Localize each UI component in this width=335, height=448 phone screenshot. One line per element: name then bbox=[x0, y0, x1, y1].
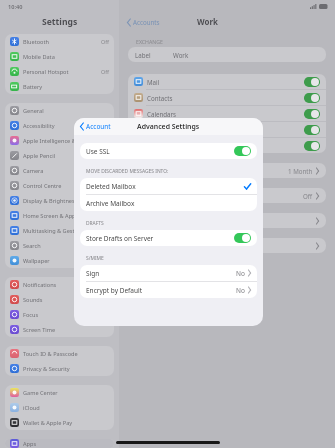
button[interactable]: Toggle bbox=[234, 233, 251, 243]
staticText: Archive Mailbox bbox=[86, 199, 135, 208]
staticText: Encrypt by Default bbox=[86, 286, 142, 295]
staticText: Work bbox=[197, 17, 218, 28]
staticText: Mail bbox=[147, 78, 160, 86]
button[interactable]: Privacy & Security bbox=[5, 361, 114, 376]
button[interactable]: Apple Intelligence & S bbox=[5, 133, 114, 148]
button[interactable]: Sounds bbox=[5, 292, 114, 307]
button[interactable]: Toggle bbox=[304, 93, 320, 103]
button[interactable]: Label bbox=[128, 47, 326, 62]
button[interactable]: Accessibility bbox=[5, 118, 114, 133]
staticText: Use SSL bbox=[86, 147, 110, 156]
button[interactable]: Reminders bbox=[128, 122, 326, 137]
staticText: S/MIME bbox=[86, 255, 104, 262]
button[interactable]: General bbox=[5, 103, 114, 118]
staticText: Search bbox=[23, 242, 41, 250]
button[interactable]: Sign bbox=[80, 265, 257, 281]
button[interactable]: Wallpaper bbox=[5, 253, 114, 268]
button[interactable]: Accounts bbox=[125, 16, 162, 28]
staticText: DRAFTS bbox=[86, 220, 104, 227]
staticText: Home Screen & App bbox=[23, 212, 76, 220]
staticText: Settings bbox=[42, 16, 78, 28]
button[interactable]: Notifications bbox=[5, 277, 114, 292]
button[interactable]: Toggle bbox=[304, 141, 320, 151]
button[interactable]: Focus bbox=[5, 307, 114, 322]
staticText: Off bbox=[303, 192, 313, 200]
button[interactable]: Calendars bbox=[128, 106, 326, 121]
button[interactable]: iCloud bbox=[5, 400, 114, 415]
button[interactable]: Toggle bbox=[304, 125, 320, 135]
button[interactable]: Mail Days to Sync bbox=[128, 163, 326, 178]
button[interactable]: Encrypt by Default bbox=[80, 282, 257, 298]
staticText: Account bbox=[86, 122, 111, 131]
staticText: Off bbox=[101, 38, 109, 45]
staticText: Accounts bbox=[133, 18, 160, 26]
button[interactable]: Deleted Mailbox bbox=[80, 178, 257, 194]
staticText: Control Centre bbox=[23, 182, 62, 190]
button[interactable]: Advanced Settings bbox=[128, 213, 326, 228]
staticText: Sign bbox=[86, 269, 100, 278]
button[interactable]: Account bbox=[78, 120, 113, 133]
staticText: Notifications bbox=[23, 281, 57, 289]
staticText: 1 Month bbox=[288, 167, 313, 175]
staticText: Store Drafts on Server bbox=[86, 234, 154, 243]
button[interactable]: Mobile Data bbox=[5, 49, 114, 64]
button[interactable]: Game Center bbox=[5, 385, 114, 400]
button[interactable]: Personal Hotspot bbox=[5, 64, 114, 79]
button[interactable]: Store Drafts on Server bbox=[80, 230, 257, 246]
button[interactable]: Notes bbox=[128, 138, 326, 153]
button[interactable]: Battery bbox=[5, 79, 114, 94]
button[interactable]: Archive Mailbox bbox=[80, 195, 257, 211]
button[interactable]: Display & Brightnes bbox=[5, 193, 114, 208]
button[interactable]: Wallet & Apple Pay bbox=[5, 415, 114, 430]
button[interactable]: Touch ID & Passcode bbox=[5, 346, 114, 361]
staticText: Mail Folder Push bbox=[135, 192, 184, 200]
staticText: Calendars bbox=[147, 110, 177, 118]
button[interactable]: Search bbox=[5, 238, 114, 253]
staticText: Apple Intelligence & S bbox=[23, 137, 81, 145]
staticText: Multitasking & Gest bbox=[23, 227, 75, 235]
staticText: Sounds bbox=[23, 296, 43, 304]
staticText: Game Center bbox=[23, 389, 58, 397]
staticText: Battery bbox=[23, 83, 43, 91]
button[interactable]: Control Centre bbox=[5, 178, 114, 193]
staticText: Notes bbox=[147, 142, 165, 150]
staticText: Display & Brightnes bbox=[23, 197, 75, 205]
staticText: Camera bbox=[23, 167, 44, 175]
staticText: EXCHANGE bbox=[136, 38, 163, 45]
staticText: Focus bbox=[23, 311, 39, 319]
button[interactable]: Multitasking & Gest bbox=[5, 223, 114, 238]
staticText: Label bbox=[135, 51, 151, 59]
button[interactable]: Apple Pencil bbox=[5, 148, 114, 163]
button[interactable]: Toggle bbox=[304, 109, 320, 119]
button[interactable]: Toggle bbox=[234, 146, 251, 156]
staticText: Personal Hotspot bbox=[23, 68, 69, 76]
staticText: Mobile Data bbox=[23, 53, 55, 61]
staticText: Reminders bbox=[147, 126, 179, 134]
button[interactable]: Toggle bbox=[304, 77, 320, 87]
staticText: Contacts bbox=[147, 94, 173, 102]
staticText: General bbox=[23, 107, 44, 115]
staticText: No bbox=[236, 286, 245, 295]
staticText: Wallpaper bbox=[23, 257, 50, 265]
staticText: 10:40 bbox=[8, 3, 23, 11]
staticText: Touch ID & Passcode bbox=[23, 350, 78, 358]
button[interactable] bbox=[128, 238, 326, 253]
button[interactable]: Apps bbox=[5, 439, 114, 448]
staticText: Screen Time bbox=[23, 326, 56, 334]
button[interactable]: Home Screen & App bbox=[5, 208, 114, 223]
staticText: Deleted Mailbox bbox=[86, 182, 136, 191]
staticText: Accessibility bbox=[23, 122, 55, 130]
staticText: Bluetooth bbox=[23, 38, 49, 46]
button[interactable]: Contacts bbox=[128, 90, 326, 105]
staticText: Off bbox=[101, 68, 109, 75]
button[interactable]: Bluetooth bbox=[5, 34, 114, 49]
button[interactable]: Camera bbox=[5, 163, 114, 178]
button[interactable]: Use SSL bbox=[80, 143, 257, 159]
staticText: Advanced Settings bbox=[137, 122, 200, 131]
staticText: Privacy & Security bbox=[23, 365, 70, 373]
staticText: Wallet & Apple Pay bbox=[23, 419, 73, 427]
button[interactable]: Screen Time bbox=[5, 322, 114, 337]
button[interactable]: Mail Folder Push bbox=[128, 188, 326, 203]
button[interactable]: Mail bbox=[128, 74, 326, 89]
